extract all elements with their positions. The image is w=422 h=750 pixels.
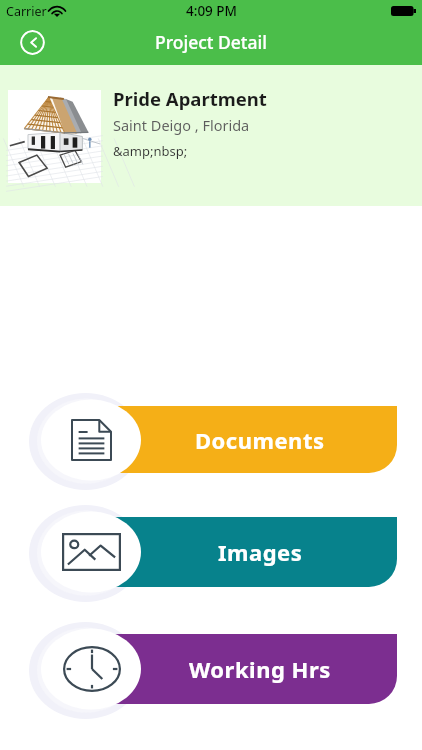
staticText: Project Detail	[155, 30, 268, 54]
staticText: Carrier	[6, 3, 47, 20]
staticText: 4:09 PM	[186, 2, 237, 20]
button[interactable]: Images	[112, 517, 397, 587]
staticText: Working Hrs	[189, 654, 331, 684]
staticText: Pride Apartment	[113, 86, 267, 111]
button[interactable]: Documents	[112, 406, 397, 473]
button[interactable]: Working Hrs	[112, 634, 397, 704]
staticText: Documents	[195, 425, 325, 455]
button[interactable]: Images	[27, 500, 145, 604]
button[interactable]: Back	[20, 30, 45, 55]
staticText: Images	[218, 537, 303, 567]
staticText: &amp;nbsp;	[113, 142, 188, 160]
staticText: Saint Deigo , Florida	[113, 115, 250, 135]
button[interactable]: Documents	[27, 388, 145, 492]
button[interactable]: Working Hrs	[27, 617, 145, 721]
